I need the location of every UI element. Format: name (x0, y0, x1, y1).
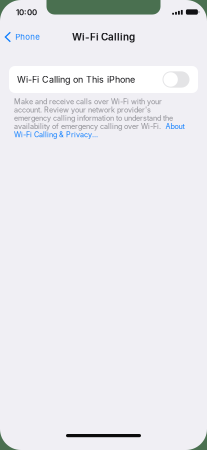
staticText: Phone (15, 32, 40, 42)
staticText: Make and receive calls over Wi-Fi with y… (14, 97, 162, 106)
staticText: emergency calling information to underst… (14, 114, 173, 122)
button[interactable]: About (165, 122, 184, 131)
button[interactable]: Wi-Fi Calling on This iPhone (9, 66, 198, 93)
button[interactable]: Phone (0, 28, 46, 46)
staticText: account. Review your network provider's (14, 105, 151, 114)
staticText: Wi-Fi Calling & Privacy... (14, 130, 98, 139)
staticText: 10:00 (16, 8, 37, 17)
staticText: Wi-Fi Calling on This iPhone (17, 74, 135, 85)
staticText: Wi-Fi Calling (72, 31, 135, 43)
staticText: availability of emergency calling over W… (14, 122, 161, 131)
staticText: About (165, 122, 184, 131)
button[interactable]: Wi-Fi Calling & Privacy... (14, 130, 98, 139)
